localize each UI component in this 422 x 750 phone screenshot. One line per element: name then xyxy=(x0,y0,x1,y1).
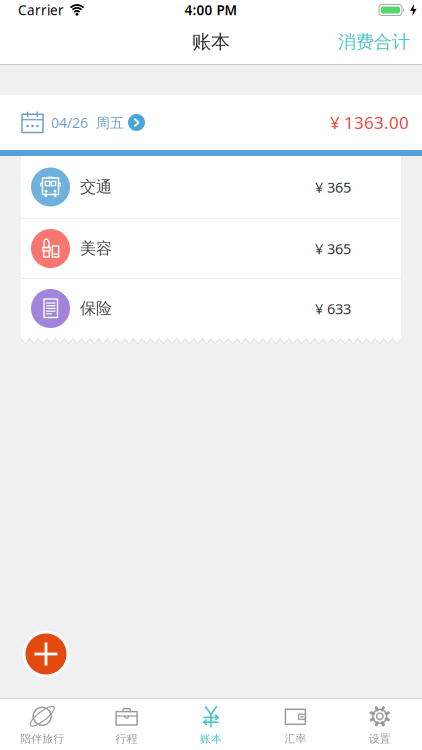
staticText: 交通 xyxy=(80,177,112,197)
staticText: 保险 xyxy=(80,298,112,319)
staticText: ¥ 633 xyxy=(315,299,351,318)
staticText: 04/26 周五 xyxy=(51,113,124,132)
button[interactable]: 保险 xyxy=(21,279,401,338)
staticText: ¥ 365 xyxy=(315,177,351,197)
button[interactable]: 账本 xyxy=(169,699,253,750)
button[interactable]: 设置 xyxy=(338,699,422,750)
staticText: ¥ 1363.00 xyxy=(330,111,409,134)
button[interactable]: 陪伴旅行 xyxy=(0,699,84,750)
button[interactable]: 汇率 xyxy=(253,699,338,750)
staticText: 设置 xyxy=(369,732,391,746)
staticText: 消费合计 xyxy=(338,31,410,53)
staticText: 美容 xyxy=(80,238,112,259)
button[interactable]: 消费合计 xyxy=(338,31,422,53)
button[interactable]: 交通 xyxy=(21,156,401,218)
staticText: Carrier xyxy=(18,1,64,19)
staticText: ¥ 365 xyxy=(315,239,351,258)
button[interactable]: 行程 xyxy=(84,699,169,750)
button[interactable]: Add xyxy=(22,630,69,677)
staticText: 汇率 xyxy=(284,732,306,746)
staticText: 4:00 PM xyxy=(184,1,237,19)
staticText: 账本 xyxy=(192,30,230,54)
button[interactable]: 04/26 周五 xyxy=(0,111,145,133)
staticText: 账本 xyxy=(200,732,222,746)
staticText: 陪伴旅行 xyxy=(20,732,64,746)
button[interactable]: 美容 xyxy=(21,219,401,278)
staticText: 行程 xyxy=(116,732,138,746)
